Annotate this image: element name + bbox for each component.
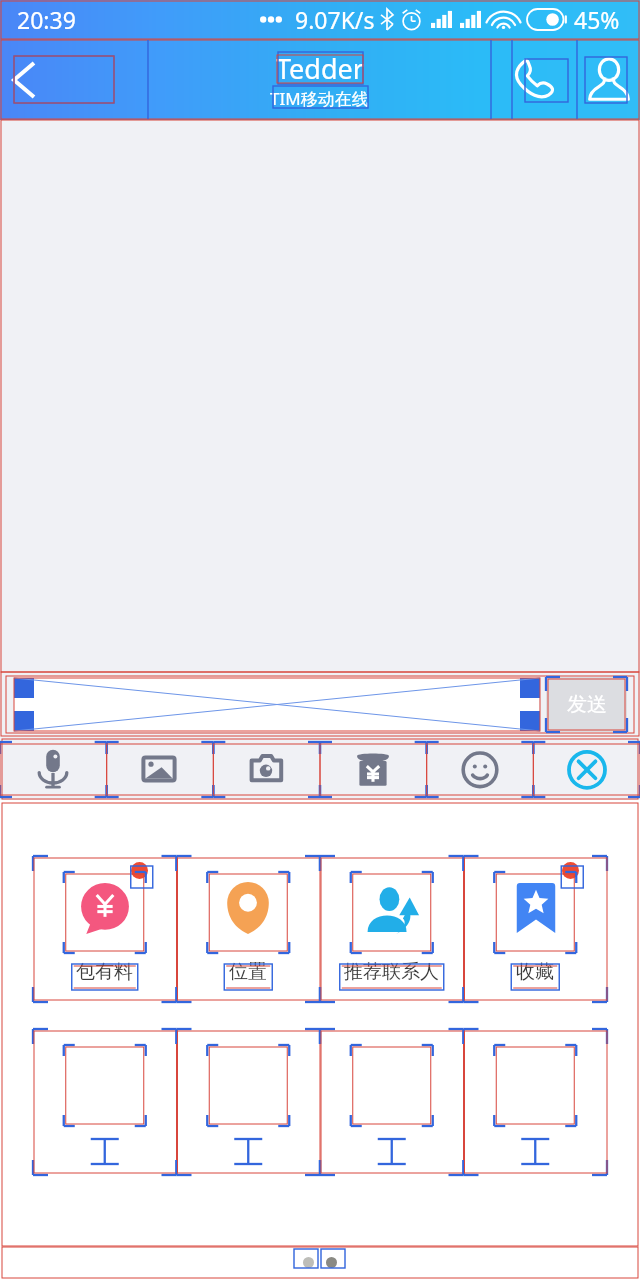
staticText: 推荐联系人 [344, 960, 439, 984]
staticText: 9.07K/s [295, 4, 375, 35]
button[interactable]: 包有料 [33, 851, 176, 998]
button[interactable]: Red packet [319, 738, 426, 800]
staticText: Tedder [276, 50, 364, 87]
button[interactable]: 收藏 [463, 851, 607, 998]
button[interactable]: Back [0, 39, 148, 120]
button[interactable]: Emoji [426, 738, 533, 800]
button[interactable]: 推荐联系人 [319, 851, 463, 998]
staticText: 收藏 [516, 960, 554, 984]
button[interactable] [176, 1025, 319, 1171]
button[interactable] [319, 1025, 463, 1171]
button[interactable]: 位置 [176, 851, 319, 998]
button[interactable]: Photo [106, 738, 212, 800]
button[interactable] [33, 1025, 176, 1171]
staticText: 发送 [567, 692, 607, 717]
button[interactable]: 发送 [546, 677, 627, 732]
staticText: 20:39 [17, 4, 76, 35]
button[interactable]: Close [533, 738, 640, 800]
staticText: 位置 [229, 960, 267, 984]
button[interactable]: Camera [212, 738, 319, 800]
staticText: 45% [574, 4, 620, 35]
button[interactable]: Voice [0, 738, 106, 800]
button[interactable]: Call [491, 39, 577, 120]
button[interactable]: Profile [577, 39, 640, 120]
staticText: 包有料 [76, 960, 133, 984]
button[interactable] [463, 1025, 607, 1171]
button[interactable] [14, 677, 539, 732]
staticText: TIM移动在线 [270, 87, 369, 110]
